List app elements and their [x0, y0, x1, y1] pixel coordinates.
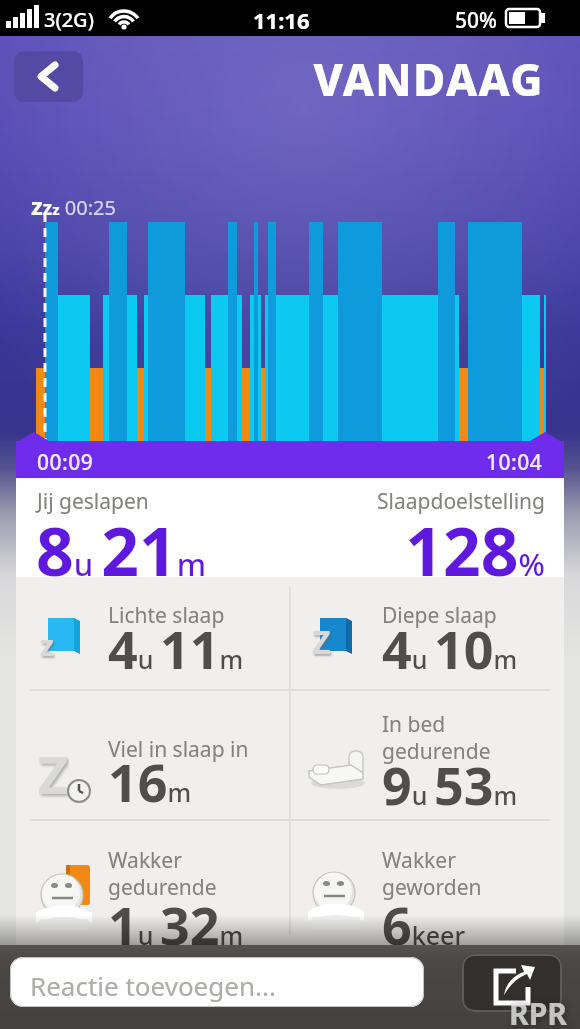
staticText: gedurende: [108, 873, 217, 902]
staticText: 4u 10m: [382, 613, 518, 684]
staticText: 50%: [455, 6, 497, 35]
button[interactable]: [290, 820, 564, 945]
staticText: Wakker: [108, 846, 182, 875]
staticText: Wakker: [382, 846, 456, 875]
button[interactable]: Reactie toevoegen...: [10, 957, 424, 1007]
staticText: Lichte slaap: [108, 601, 225, 630]
staticText: z: [40, 626, 54, 664]
staticText: In bed: [382, 710, 446, 739]
staticText: Viel in slaap in: [108, 735, 249, 764]
staticText: Z: [312, 620, 331, 664]
staticText: Reactie toevoegen...: [30, 968, 276, 1003]
staticText: gedurende: [382, 737, 491, 766]
staticText: 4u 11m: [108, 613, 244, 684]
staticText: Z: [38, 738, 69, 802]
staticText: Slaapdoelstelling: [16, 487, 545, 516]
button[interactable]: [16, 577, 290, 690]
button[interactable]: [290, 690, 564, 820]
staticText: 6keer: [382, 889, 465, 960]
staticText: 9u 53m: [382, 749, 518, 820]
staticText: 16m: [108, 746, 192, 817]
staticText: 3(2G): [44, 6, 94, 33]
staticText: 8u 21m: [36, 505, 207, 595]
button[interactable]: [462, 954, 562, 1012]
staticText: zzz 00:25: [31, 189, 116, 222]
staticText: RPR: [509, 993, 567, 1029]
button[interactable]: [14, 51, 83, 102]
staticText: geworden: [382, 873, 482, 902]
staticText: VANDAAG: [0, 49, 544, 109]
staticText: Jij geslapen: [37, 487, 149, 516]
staticText: 1u 32m: [108, 889, 244, 960]
staticText: 10:04: [486, 448, 543, 477]
staticText: 00:09: [37, 448, 94, 477]
staticText: Diepe slaap: [382, 601, 497, 630]
staticText: 11:16: [253, 5, 310, 35]
button[interactable]: [16, 820, 290, 945]
staticText: 128%: [16, 505, 545, 595]
button[interactable]: [290, 577, 564, 690]
button[interactable]: Jij geslapen: [16, 478, 564, 577]
button[interactable]: [16, 690, 290, 820]
